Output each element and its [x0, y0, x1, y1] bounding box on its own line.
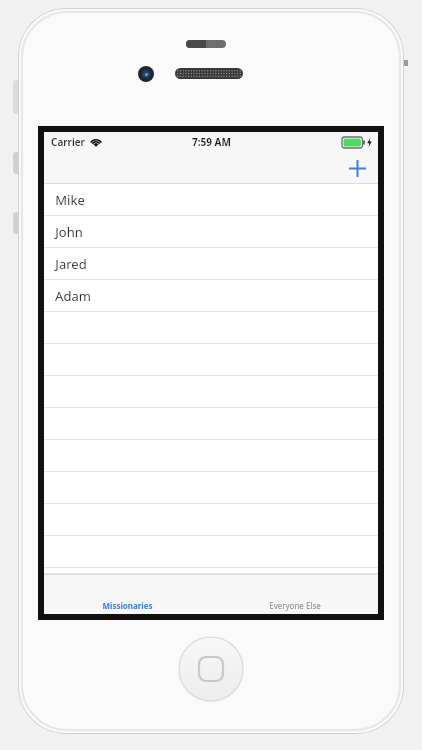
- staticText: John: [55, 223, 83, 241]
- staticText: 7:59 AM: [192, 135, 231, 149]
- staticText: Adam: [55, 287, 91, 305]
- staticText: Everyone Else: [269, 600, 321, 611]
- staticText: Missionaries: [102, 600, 153, 611]
- button[interactable]: Add: [342, 153, 372, 183]
- button[interactable]: Mike: [44, 184, 378, 216]
- button[interactable]: John: [44, 216, 378, 248]
- button[interactable]: Missionaries: [44, 574, 211, 614]
- button[interactable]: Adam: [44, 280, 378, 312]
- staticText: Mike: [55, 191, 85, 209]
- staticText: Carrier: [51, 135, 85, 149]
- button[interactable]: Everyone Else: [211, 574, 378, 614]
- staticText: Jared: [55, 255, 87, 273]
- button[interactable]: Jared: [44, 248, 378, 280]
